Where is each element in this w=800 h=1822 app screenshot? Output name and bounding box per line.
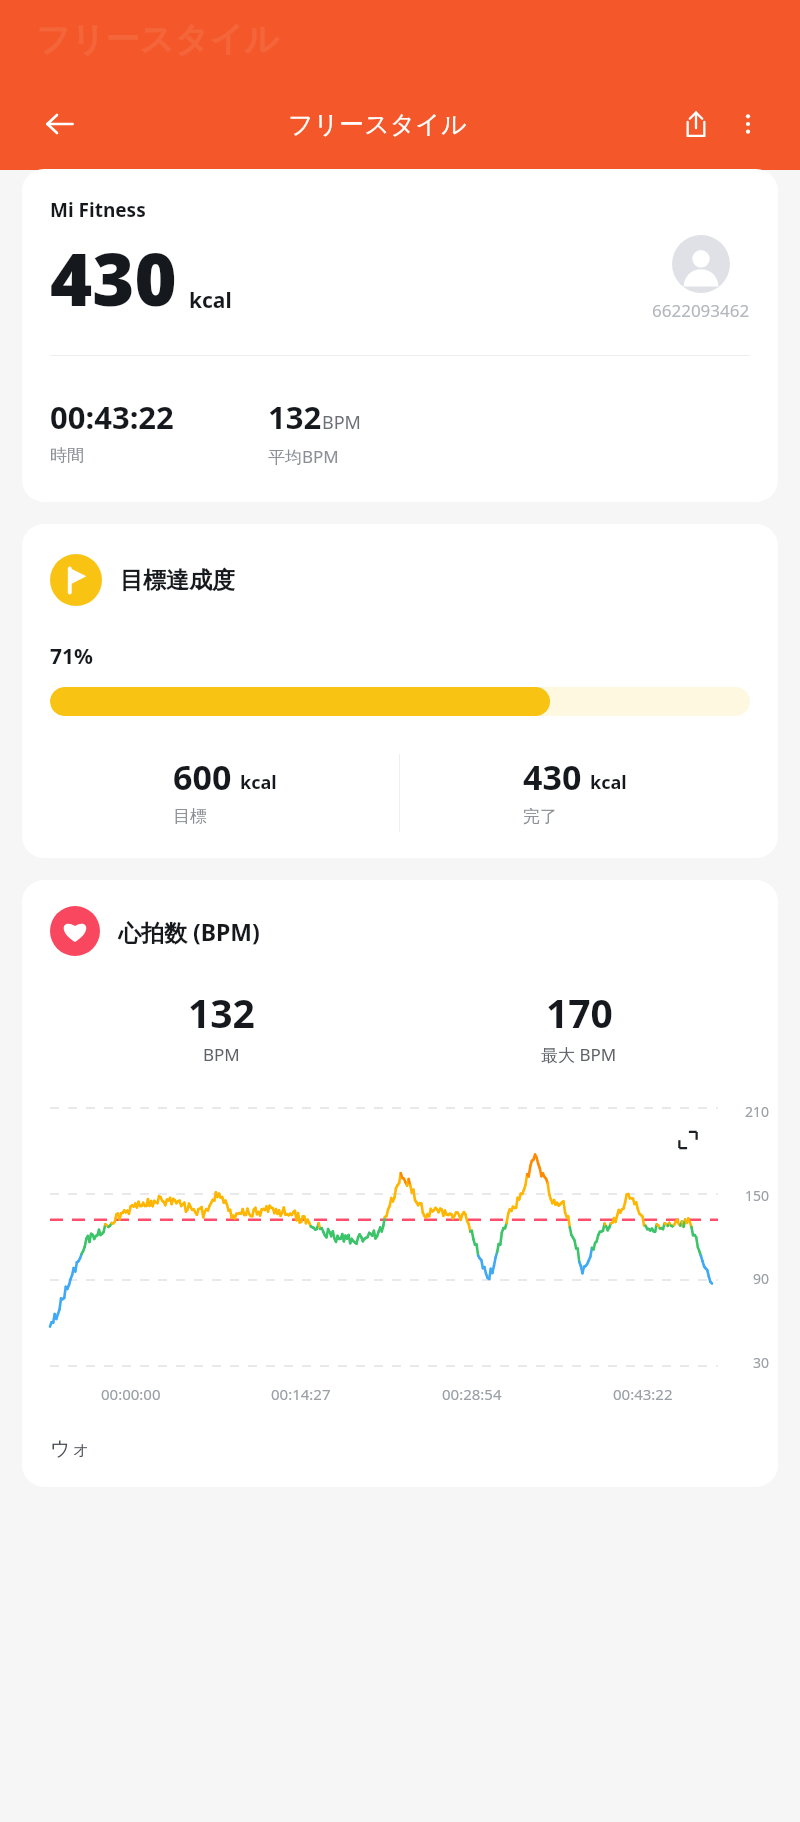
staticText: BPM xyxy=(322,410,361,435)
staticText: BPM xyxy=(203,1043,240,1066)
staticText: kcal xyxy=(590,770,627,795)
button[interactable]: More options xyxy=(722,98,774,150)
staticText: 時間 xyxy=(50,445,84,466)
staticText: 6622093462 xyxy=(652,299,750,322)
staticText: kcal xyxy=(189,286,232,315)
staticText: 目標 xyxy=(173,806,207,827)
button[interactable]: Share xyxy=(670,98,722,150)
staticText: 90 xyxy=(753,1269,770,1288)
staticText: 210 xyxy=(745,1102,770,1121)
staticText: 00:14:27 xyxy=(271,1384,331,1404)
staticText: 430 xyxy=(50,229,177,327)
staticText: 71% xyxy=(50,642,93,671)
staticText: 00:43:22 xyxy=(50,396,174,438)
staticText: 最大 BPM xyxy=(541,1043,617,1066)
staticText: 平均BPM xyxy=(268,445,339,468)
staticText: 完了 xyxy=(523,806,557,827)
button[interactable]: Expand chart xyxy=(666,1118,710,1162)
staticText: 150 xyxy=(745,1186,770,1205)
staticText: Mi Fitness xyxy=(50,197,146,223)
staticText: 心拍数 (BPM) xyxy=(118,916,260,947)
staticText: 600 xyxy=(173,754,232,800)
staticText: 00:43:22 xyxy=(613,1384,673,1404)
staticText: 30 xyxy=(753,1353,770,1372)
staticText: フリースタイル xyxy=(288,109,467,140)
staticText: kcal xyxy=(240,770,277,795)
staticText: フリースタイル xyxy=(36,18,279,61)
staticText: 00:28:54 xyxy=(442,1384,502,1404)
staticText: 00:00:00 xyxy=(101,1384,161,1404)
staticText: 170 xyxy=(546,986,613,1039)
staticText: 132 xyxy=(268,396,322,438)
staticText: 132 xyxy=(188,986,255,1039)
staticText: ウォ xyxy=(50,1436,91,1461)
staticText: 430 xyxy=(523,754,582,800)
button[interactable]: Back xyxy=(36,100,84,148)
staticText: 目標達成度 xyxy=(120,566,235,595)
